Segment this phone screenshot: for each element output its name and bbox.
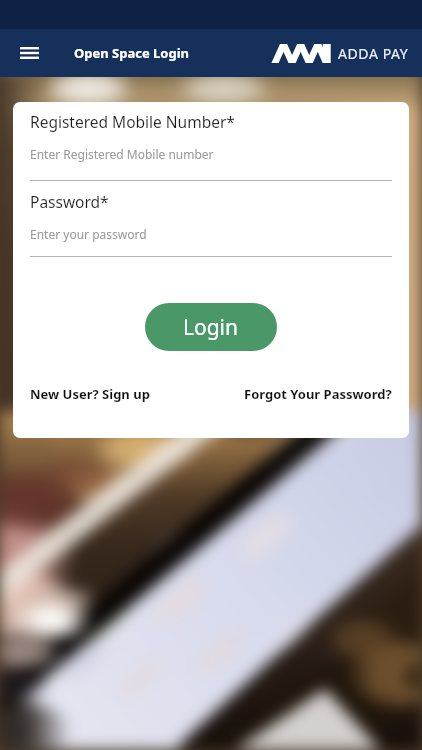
button[interactable]: Open navigation menu: [10, 34, 48, 72]
staticText: Open Space Login: [74, 44, 190, 62]
staticText: Login: [183, 313, 239, 342]
button[interactable]: Forgot Your Password?: [244, 385, 392, 403]
staticText: Registered Mobile Number*: [30, 111, 235, 132]
staticText: Enter Registered Mobile number: [30, 146, 214, 162]
button[interactable]: Login: [145, 303, 277, 351]
staticText: Password*: [30, 191, 109, 212]
button[interactable]: New User? Sign up: [30, 385, 150, 403]
staticText: Enter your password: [30, 226, 147, 242]
staticText: ADDA PAY: [338, 44, 409, 63]
